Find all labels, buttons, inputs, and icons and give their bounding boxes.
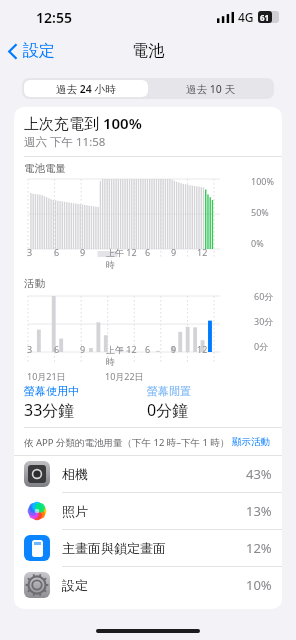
staticText: 依 APP 分類的電池用量（下午 12 時–下午 1 時） [24,436,230,449]
button[interactable]: 主畫面與鎖定畫面 [14,530,282,567]
staticText: 6 [145,343,151,355]
staticText: 電池電量 [24,162,66,175]
staticText: 4G [238,9,254,25]
button[interactable]: 相機 [14,456,282,493]
staticText: 60分 [254,290,274,302]
staticText: 主畫面與鎖定畫面 [62,540,246,556]
staticText: 設定 [62,577,246,593]
staticText: 9 [171,343,177,355]
staticText: 電池 [132,41,164,61]
staticText: 9 [80,246,86,258]
staticText: 12 [197,343,208,355]
staticText: 上午 12 時 [106,246,142,271]
staticText: 61 [260,12,270,23]
staticText: 6 [145,246,151,258]
staticText: 過去 24 小時 [56,82,116,96]
staticText: 6 [54,246,60,258]
staticText: 12:55 [36,8,72,27]
button[interactable]: 過去 10 天 [148,80,272,97]
staticText: 螢幕閒置 [147,384,191,398]
staticText: 0分 [254,340,269,352]
staticText: 43% [246,465,272,483]
staticText: 12% [246,539,272,557]
staticText: 33分鐘 [24,399,75,421]
staticText: 100% [251,175,274,187]
staticText: 相機 [62,466,246,482]
button[interactable]: 設定 [0,37,63,65]
button[interactable]: 照片 [14,493,282,530]
button[interactable]: 過去 24 小時 [24,80,148,97]
staticText: 設定 [23,41,55,61]
staticText: 0分鐘 [147,399,189,421]
staticText: 50% [251,206,269,218]
button[interactable]: 顯示活動 [230,434,272,450]
staticText: 9 [80,343,86,355]
staticText: 3 [27,246,33,258]
staticText: 上午 12 時 [106,343,142,368]
staticText: 0% [251,237,264,249]
staticText: 上次充電到 100% [24,113,142,133]
staticText: 螢幕使用中 [24,384,79,398]
staticText: 9 [171,246,177,258]
staticText: 10月22日 [105,370,144,382]
button[interactable]: 設定 [14,567,282,603]
staticText: 6 [54,343,60,355]
staticText: 13% [246,502,272,520]
staticText: 週六 下午 11:58 [24,134,106,150]
staticText: 10% [246,576,272,594]
staticText: 照片 [62,503,246,519]
staticText: 過去 10 天 [186,82,235,96]
staticText: 12 [197,246,208,258]
staticText: 30分 [254,315,274,327]
staticText: 活動 [24,277,45,290]
staticText: 10月21日 [27,370,66,382]
staticText: 3 [27,343,33,355]
